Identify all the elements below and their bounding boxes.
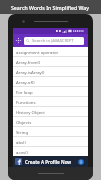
staticText: assignment operator xyxy=(16,49,59,55)
button[interactable]: Array.from() xyxy=(13,57,88,66)
staticText: History Object xyxy=(16,109,45,115)
button[interactable]: Menu xyxy=(13,35,24,46)
button[interactable]: assignment operator xyxy=(13,47,88,56)
button[interactable]: Search in JAVASCRIPT xyxy=(24,37,84,45)
staticText: Create A Profile Now xyxy=(25,159,72,165)
button[interactable]: String xyxy=(13,127,88,136)
staticText: Array.isArray() xyxy=(16,69,45,75)
button[interactable]: Objects xyxy=(13,117,88,126)
staticText: Array.of() xyxy=(16,79,35,85)
staticText: acos() xyxy=(16,149,28,155)
staticText: For loop xyxy=(16,89,33,95)
button[interactable]: acos() xyxy=(13,147,88,156)
staticText: Array.from() xyxy=(16,59,41,65)
button[interactable]: Array.isArray() xyxy=(13,67,88,76)
button[interactable]: Ad info xyxy=(77,158,85,166)
staticText: Objects xyxy=(16,119,32,125)
staticText: Search in JAVASCRIPT xyxy=(32,38,74,44)
button[interactable]: History Object xyxy=(13,107,88,116)
button[interactable]: abs() xyxy=(13,137,88,146)
button[interactable]: For loop xyxy=(13,87,88,96)
staticText: String xyxy=(16,129,29,135)
staticText: Search Words In Simplified Way xyxy=(11,4,90,11)
button[interactable]: Array.of() xyxy=(13,77,88,86)
button[interactable]: Functions xyxy=(13,97,88,106)
button[interactable]: Create A Profile Now xyxy=(13,156,88,167)
staticText: Functions xyxy=(16,99,36,105)
staticText: abs() xyxy=(16,139,26,145)
